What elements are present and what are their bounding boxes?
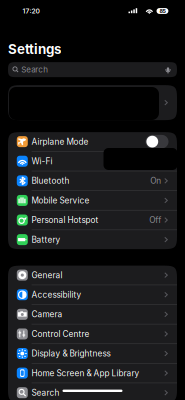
staticText: Mobile Service	[32, 195, 90, 205]
staticText: Airplane Mode	[32, 137, 89, 147]
staticText: 85	[159, 8, 165, 14]
button[interactable]: Battery	[8, 230, 177, 249]
staticText: On	[150, 176, 161, 186]
staticText: Battery	[32, 235, 61, 245]
button[interactable]: Wi-Fi	[8, 152, 177, 171]
staticText: Off	[149, 215, 161, 225]
button[interactable]: Home Screen & App Library	[8, 364, 177, 383]
button[interactable]: Accessibility	[8, 285, 177, 304]
button[interactable]: Mobile Service	[8, 191, 177, 210]
staticText: Wi-Fi	[32, 156, 53, 166]
staticText: Home Screen & App Library	[32, 368, 140, 378]
button[interactable]: General	[8, 266, 177, 285]
button[interactable]: Display & Brightness	[8, 344, 177, 363]
button[interactable]: Camera	[8, 305, 177, 324]
staticText: 17:20	[22, 7, 39, 15]
button[interactable]	[8, 85, 177, 120]
button[interactable]: Search	[8, 62, 177, 77]
button[interactable]: Personal Hotspot	[8, 210, 177, 229]
staticText: Bluetooth	[32, 176, 70, 186]
button[interactable]: Control Centre	[8, 324, 177, 343]
staticText: Search	[32, 388, 60, 398]
staticText: Camera	[32, 309, 63, 319]
staticText: Accessibility	[32, 290, 82, 300]
staticText: Display & Brightness	[32, 348, 111, 358]
staticText: Control Centre	[32, 329, 90, 339]
button[interactable]: Bluetooth	[8, 171, 177, 190]
staticText: Search	[21, 65, 48, 74]
staticText: Personal Hotspot	[32, 215, 99, 225]
button[interactable]: Search	[8, 383, 177, 400]
staticText: General	[32, 270, 63, 280]
staticText: Settings	[8, 41, 61, 57]
button[interactable]: Airplane Mode	[8, 132, 177, 151]
